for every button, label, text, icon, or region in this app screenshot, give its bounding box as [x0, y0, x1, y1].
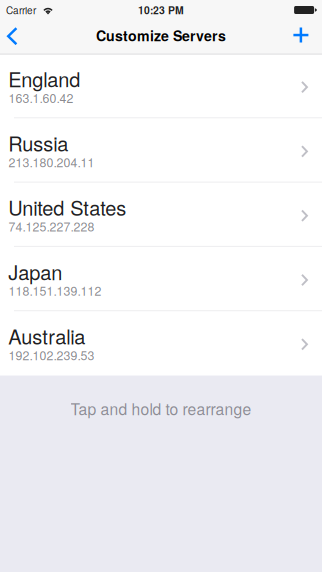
staticText: Customize Servers: [96, 25, 226, 46]
staticText: Australia: [8, 321, 85, 350]
button[interactable]: Back: [0, 19, 27, 53]
staticText: Japan: [8, 257, 62, 286]
staticText: 10:23 PM: [138, 3, 184, 17]
button[interactable]: United States: [0, 183, 322, 247]
staticText: 74.125.227.228: [9, 217, 95, 235]
staticText: Tap and hold to rearrange: [70, 397, 251, 420]
staticText: Russia: [8, 129, 68, 157]
button[interactable]: England: [0, 54, 322, 118]
staticText: United States: [8, 193, 126, 221]
staticText: 118.151.139.112: [9, 282, 102, 299]
button[interactable]: Russia: [0, 118, 322, 183]
staticText: 213.180.204.11: [9, 153, 95, 171]
staticText: 163.1.60.42: [9, 89, 74, 106]
staticText: 192.102.239.53: [9, 346, 95, 364]
button[interactable]: Australia: [0, 311, 322, 375]
staticText: Carrier: [6, 3, 36, 17]
button[interactable]: Japan: [0, 247, 322, 311]
staticText: England: [8, 64, 80, 93]
button[interactable]: Add server: [286, 18, 316, 52]
